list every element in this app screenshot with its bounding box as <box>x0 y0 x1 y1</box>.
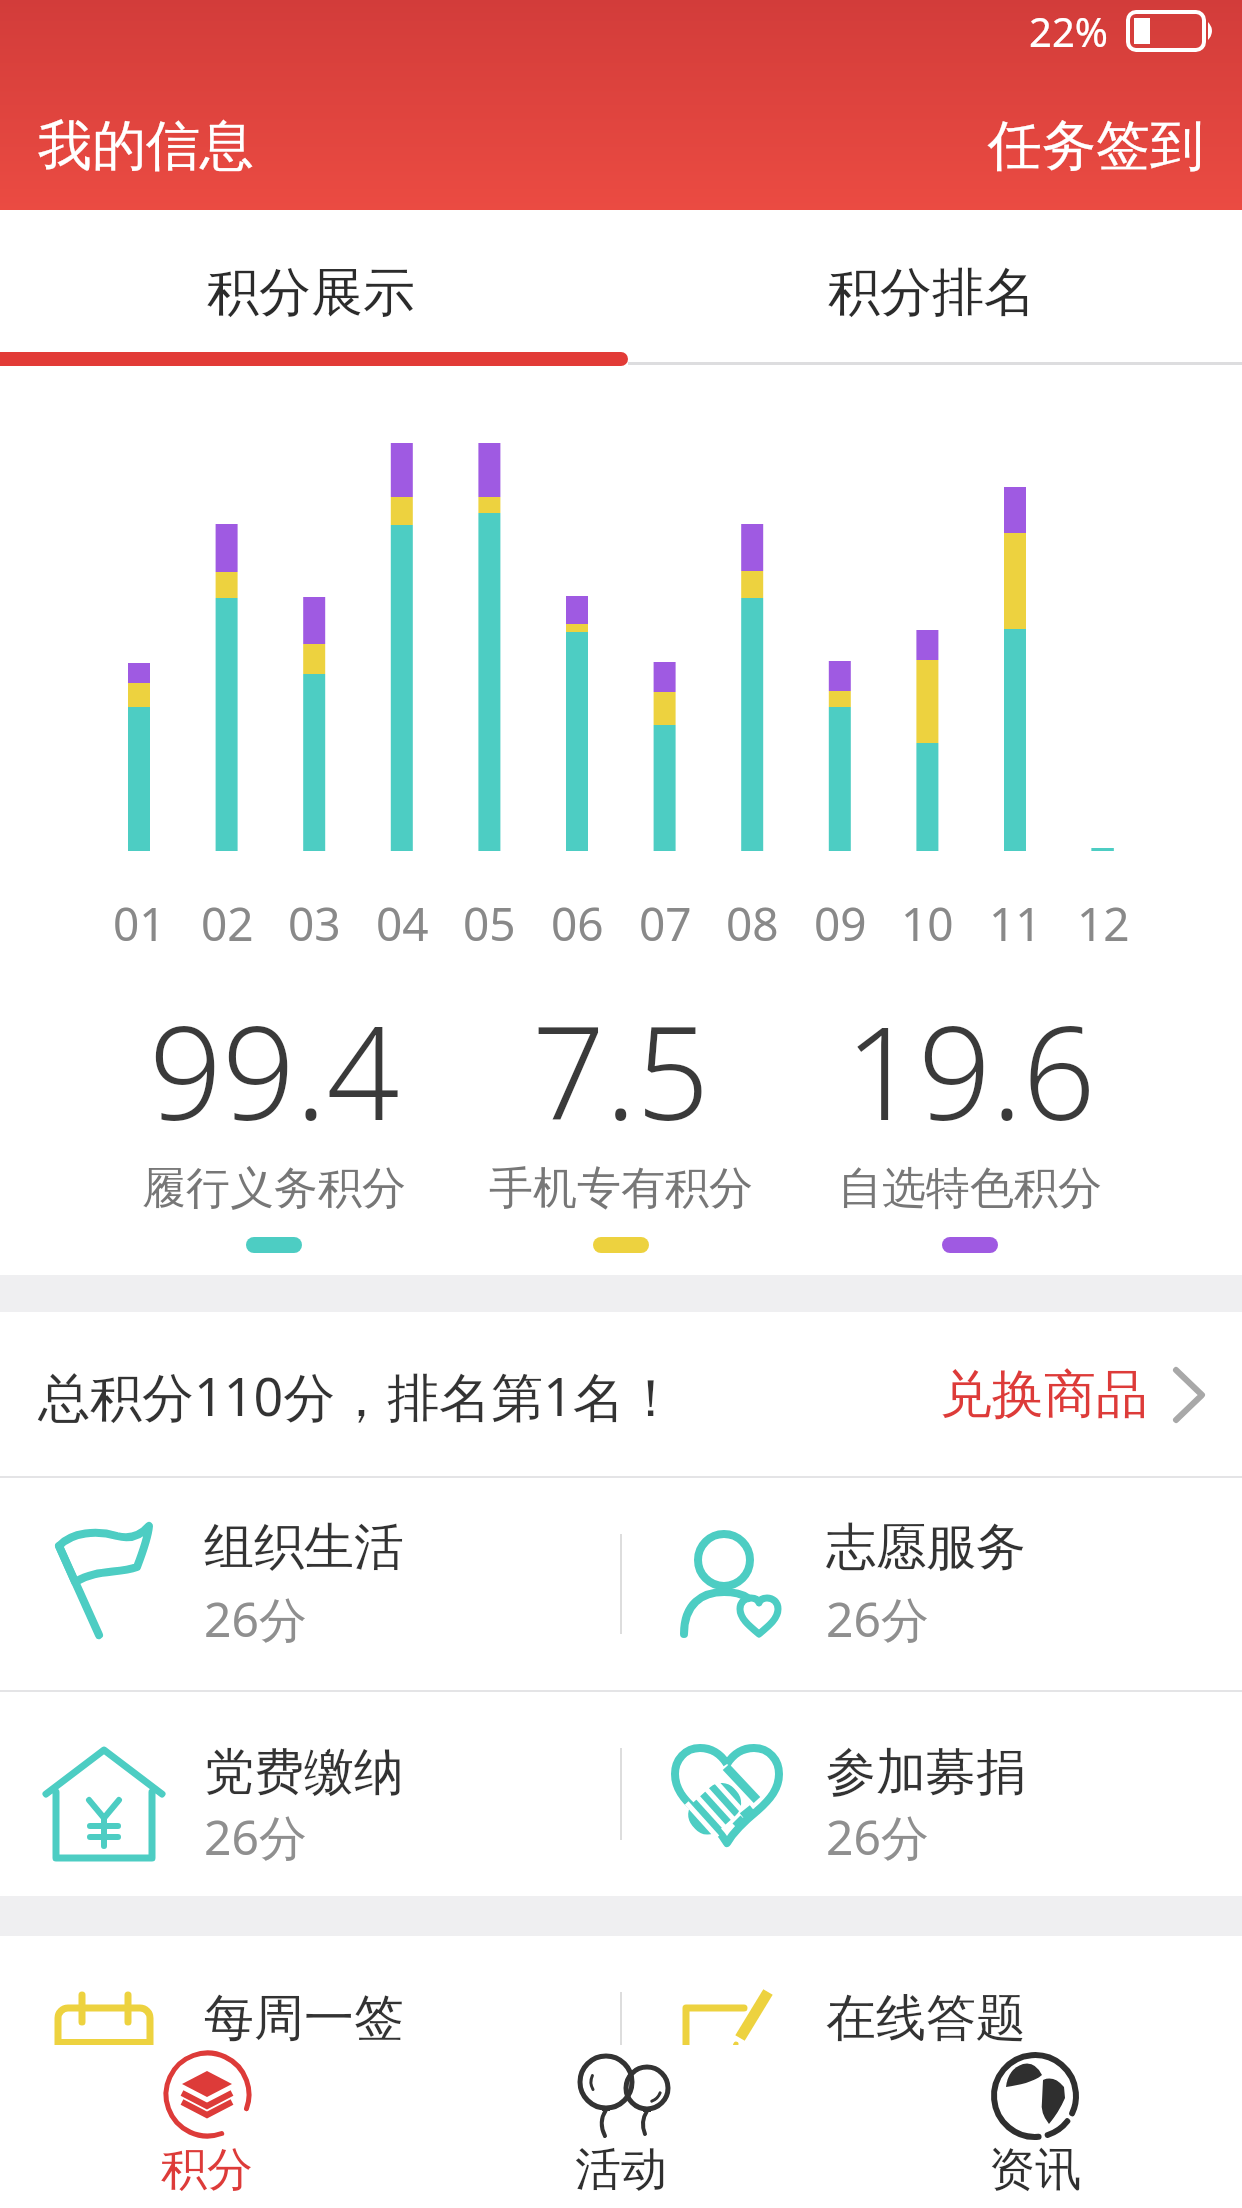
button[interactable]: 志愿服务 <box>622 1478 1242 1690</box>
button[interactable]: 组织生活 <box>0 1478 620 1690</box>
staticText: 自选特色积分 <box>838 1161 1102 1216</box>
staticText: 03 <box>288 892 341 955</box>
staticText: 26分 <box>204 1804 307 1870</box>
staticText: 履行义务积分 <box>142 1161 406 1216</box>
staticText: 资讯 <box>989 2141 1081 2199</box>
button[interactable]: 活动 <box>414 2045 828 2208</box>
staticText: 每周一签 <box>204 1987 404 2050</box>
staticText: 在线答题 <box>826 1987 1026 2050</box>
staticText: 04 <box>376 892 429 955</box>
staticText: 组织生活 <box>204 1516 404 1579</box>
staticText: 06 <box>551 892 604 955</box>
button[interactable]: 积分 <box>0 2045 414 2208</box>
staticText: 志愿服务 <box>826 1516 1026 1579</box>
staticText: 08 <box>726 892 779 955</box>
staticText: 02 <box>201 892 254 955</box>
staticText: 积分排名 <box>828 260 1036 326</box>
button[interactable]: 总积分110分，排名第1名！ <box>0 1312 1242 1478</box>
staticText: 积分展示 <box>207 260 415 326</box>
staticText: 活动 <box>575 2141 667 2199</box>
button[interactable]: 参加募捐 <box>622 1692 1242 1896</box>
staticText: 10 <box>901 892 954 955</box>
staticText: 12 <box>1077 892 1130 955</box>
staticText: 26分 <box>826 1804 929 1870</box>
staticText: 党费缴纳 <box>204 1741 404 1804</box>
staticText: 参加募捐 <box>826 1741 1026 1804</box>
button[interactable]: 任务签到 <box>988 112 1204 180</box>
staticText: 兑换商品 <box>940 1362 1148 1428</box>
staticText: 99.4 <box>149 983 400 1157</box>
button[interactable]: 积分展示 <box>0 210 621 376</box>
staticText: 01 <box>113 892 166 955</box>
staticText: 07 <box>639 892 692 955</box>
button[interactable]: 积分排名 <box>621 210 1242 376</box>
button[interactable]: 在线答题 <box>622 1936 1242 2148</box>
staticText: 手机专有积分 <box>489 1161 753 1216</box>
staticText: 22% <box>1029 4 1108 58</box>
staticText: 总积分110分，排名第1名！ <box>38 1360 677 1431</box>
staticText: 19.6 <box>845 983 1096 1157</box>
staticText: 11 <box>989 892 1042 955</box>
staticText: 26分 <box>204 1586 307 1652</box>
button[interactable]: 党费缴纳 <box>0 1692 620 1896</box>
staticText: 7.5 <box>532 983 710 1157</box>
staticText: 26分 <box>826 1586 929 1652</box>
button[interactable]: 我的信息 <box>38 112 254 180</box>
staticText: 积分 <box>161 2141 253 2199</box>
button[interactable]: 每周一签 <box>0 1936 620 2148</box>
staticText: 05 <box>463 892 516 955</box>
button[interactable]: 资讯 <box>828 2045 1242 2208</box>
staticText: 09 <box>814 892 867 955</box>
